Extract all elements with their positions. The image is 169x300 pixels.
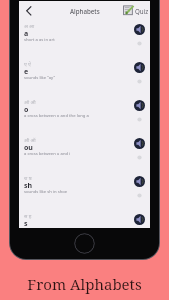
button[interactable]: Play pronunciation [134,214,145,225]
staticText: From Alphabets [0,274,169,294]
staticText: ए ऐ [24,61,31,68]
staticText: sounds like sh in shoe [24,189,68,195]
button[interactable]: Play pronunciation [134,176,145,187]
button[interactable]: स ह [19,206,150,228]
button[interactable]: Play pronunciation [134,24,145,35]
button[interactable]: Back [22,4,36,18]
staticText: short a as in art [24,37,55,43]
staticText: ओ औ [24,99,36,106]
staticText: a cross between o and the long a [24,113,89,119]
staticText: स ह [24,213,32,220]
staticText: o [24,105,29,115]
button[interactable]: श ष [19,168,150,206]
button[interactable]: अ आ [19,16,150,54]
staticText: sounds like "ay" [24,75,56,81]
staticText: a cross between u and i [24,151,71,157]
staticText: औ ऑ [24,137,36,144]
button[interactable]: Play pronunciation [134,138,145,149]
staticText: a [24,29,29,39]
staticText: श ष [24,175,32,182]
staticText: Alphabets [70,7,100,15]
staticText: अ आ [24,23,35,30]
button[interactable]: Home [74,233,95,254]
button[interactable]: औ ऑ [19,130,150,168]
staticText: e [24,67,29,77]
staticText: ou [24,143,33,153]
button[interactable]: Play pronunciation [134,62,145,73]
button[interactable]: Play pronunciation [134,100,145,111]
staticText: s [24,219,28,228]
button[interactable]: ओ औ [19,92,150,130]
button[interactable]: Quiz [123,5,149,16]
button[interactable]: ए ऐ [19,54,150,92]
staticText: Quiz [135,7,149,15]
staticText: sh [24,181,33,191]
